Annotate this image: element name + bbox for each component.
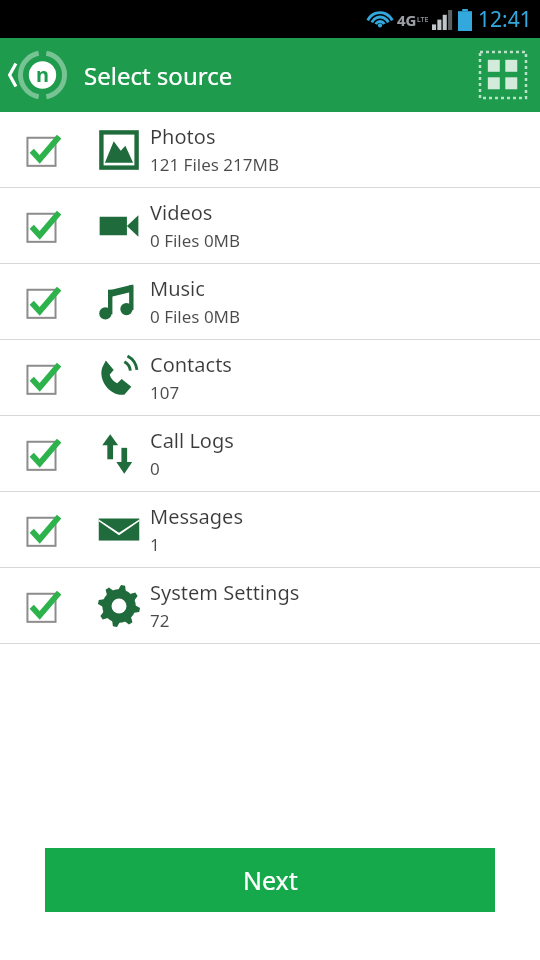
button[interactable]: Next [45,848,495,912]
staticText: Music [150,275,205,302]
staticText: Videos [150,199,213,226]
button[interactable]: Back [0,38,78,112]
staticText: 107 [150,381,180,404]
staticText: 72 [150,609,170,632]
button[interactable]: Messages [0,492,540,567]
staticText: 121 Files 217MB [150,153,279,176]
button[interactable]: Contacts [0,340,540,415]
staticText: Call Logs [150,427,234,454]
staticText: 1 [150,533,160,556]
staticText: System Settings [150,579,300,606]
button[interactable]: Videos [0,188,540,263]
staticText: Next [243,863,298,897]
staticText: LTE [417,15,429,25]
button[interactable]: Call Logs [0,416,540,491]
staticText: Photos [150,123,216,150]
staticText: 0 Files 0MB [150,229,241,252]
staticText: Select source [84,59,233,92]
button[interactable]: Music [0,264,540,339]
button[interactable]: Grid view [466,38,540,112]
staticText: 4G [397,10,417,30]
button[interactable]: Photos [0,112,540,187]
staticText: 0 [150,457,160,480]
staticText: Messages [150,503,243,530]
button[interactable]: System Settings [0,568,540,643]
staticText: 0 Files 0MB [150,305,241,328]
staticText: n [36,61,49,88]
staticText: 12:41 [478,5,532,34]
staticText: Contacts [150,351,232,378]
